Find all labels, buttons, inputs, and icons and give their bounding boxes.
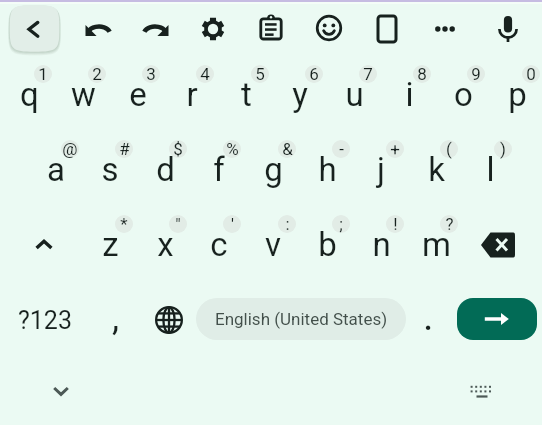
button[interactable]: Clipboard [254,12,288,46]
button[interactable]: g [246,142,300,196]
button[interactable]: m [409,217,463,271]
staticText: 3 [146,64,156,84]
button[interactable]: Emoji [312,11,346,45]
staticText: r [186,75,198,114]
button[interactable]: q [2,67,56,121]
staticText: 8 [417,64,427,84]
button[interactable]: Undo [81,12,115,46]
staticText: ; [339,214,343,234]
staticText: # [119,139,130,159]
button[interactable]: Back [4,0,66,62]
staticText: s [101,150,119,189]
button[interactable]: j [354,142,408,196]
button[interactable]: y [273,67,327,121]
staticText: ( [446,139,452,159]
staticText: * [120,214,128,234]
staticText: % [226,139,239,159]
button[interactable]: i [382,67,436,121]
staticText: 4 [200,64,210,84]
staticText: c [210,225,228,264]
staticText: f [213,150,225,189]
staticText: English (United States) [215,309,388,329]
staticText: k [428,150,445,189]
staticText: + [390,139,400,159]
staticText: m [422,225,451,264]
button[interactable]: More options [428,12,462,46]
button[interactable]: p [490,67,542,121]
staticText: ! [393,214,398,234]
button[interactable]: x [138,217,192,271]
staticText: ' [231,214,234,234]
staticText: , [112,297,120,339]
button[interactable]: e [111,67,165,121]
button[interactable]: u [327,67,381,121]
button[interactable]: , [92,293,140,343]
button[interactable]: Hide keyboard [37,367,85,415]
staticText: l [486,150,495,189]
button[interactable]: t [219,67,273,121]
staticText: . [423,293,434,340]
staticText: n [372,225,391,264]
button[interactable]: a [29,142,83,196]
staticText: 0 [526,64,536,84]
staticText: 5 [255,64,265,84]
staticText: v [265,225,281,264]
staticText: ?123 [18,306,72,335]
staticText: 7 [363,64,373,84]
button[interactable]: English (United States) [196,298,406,340]
staticText: - [339,139,344,159]
staticText: ? [445,214,454,234]
button[interactable]: d [138,142,192,196]
button[interactable]: Shift [17,218,71,272]
staticText: t [241,75,252,114]
button[interactable]: Settings [196,12,230,46]
button[interactable]: ?123 [8,295,82,345]
button[interactable]: . [407,291,449,341]
staticText: d [156,150,175,189]
staticText: 6 [309,64,319,84]
button[interactable]: Keyboard layout [458,369,506,417]
staticText: o [454,75,473,114]
button[interactable]: l [463,142,517,196]
staticText: u [345,75,364,114]
button[interactable]: o [436,67,490,121]
staticText: y [292,75,308,114]
staticText: p [508,75,527,114]
staticText: q [20,75,39,114]
staticText: i [405,75,414,114]
staticText: e [129,75,147,114]
staticText: $ [173,139,183,159]
button[interactable]: h [300,142,354,196]
button[interactable]: Backspace [471,218,525,272]
staticText: z [102,225,119,264]
button[interactable]: Enter [457,298,537,340]
button[interactable]: One-handed mode [370,12,404,46]
staticText: : [285,214,290,234]
staticText: g [264,150,283,189]
button[interactable]: w [56,67,110,121]
staticText: 2 [92,64,102,84]
button[interactable]: f [192,142,246,196]
button[interactable]: c [192,217,246,271]
staticText: @ [62,139,78,159]
button[interactable]: Switch language [145,295,193,345]
staticText: ) [500,139,506,159]
staticText: & [282,139,293,159]
button[interactable]: r [165,67,219,121]
staticText: 1 [38,64,48,84]
staticText: j [377,150,385,189]
staticText: a [47,150,65,189]
button[interactable]: n [354,217,408,271]
button[interactable]: b [300,217,354,271]
button[interactable]: Redo [139,12,173,46]
button[interactable]: Voice input [491,12,525,46]
button[interactable]: k [409,142,463,196]
staticText: " [175,214,181,234]
staticText: h [318,150,337,189]
button[interactable]: z [83,217,137,271]
staticText: b [318,225,337,264]
staticText: x [157,225,174,264]
button[interactable]: v [246,217,300,271]
staticText: w [71,75,96,114]
button[interactable]: s [83,142,137,196]
